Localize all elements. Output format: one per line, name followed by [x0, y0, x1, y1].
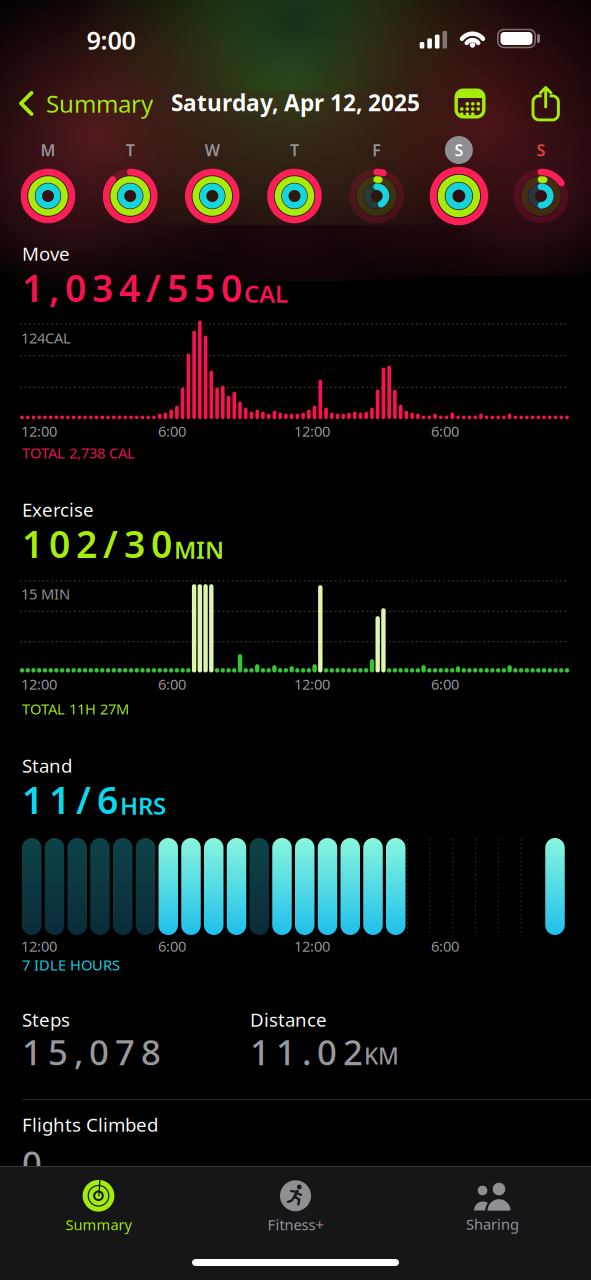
staticText: 6:00	[158, 936, 186, 956]
staticText: 0	[22, 1140, 42, 1186]
staticText: M	[40, 139, 55, 161]
staticText: Exercise	[22, 497, 94, 522]
staticText: 12:00	[21, 936, 57, 956]
staticText: 6:00	[431, 674, 459, 694]
staticText: Distance	[250, 1007, 327, 1032]
staticText: TOTAL 2,738 CAL	[22, 443, 135, 462]
staticText: Summary	[46, 87, 153, 119]
staticText: 7 IDLE HOURS	[22, 955, 120, 974]
button[interactable]: T	[99, 135, 161, 227]
staticText: 6:00	[431, 421, 459, 441]
staticText: Sharing	[466, 1214, 519, 1234]
staticText: 12:00	[294, 421, 330, 441]
staticText: W	[205, 139, 220, 161]
staticText: 6:00	[431, 936, 459, 956]
staticText: Steps	[22, 1007, 70, 1032]
button[interactable]: Back	[19, 87, 153, 119]
staticText: KM	[364, 1041, 399, 1071]
staticText: 1 , 0 3 4 / 5 5 0	[22, 263, 242, 312]
staticText: Saturday, Apr 12, 2025	[171, 87, 420, 117]
button[interactable]: Share	[533, 86, 559, 120]
button[interactable]: S	[428, 135, 490, 227]
staticText: 15 MIN	[21, 584, 70, 603]
button[interactable]: Choose date	[454, 88, 485, 118]
staticText: T	[126, 139, 135, 161]
staticText: 12:00	[294, 936, 330, 956]
button[interactable]: F	[346, 135, 408, 227]
staticText: 1 5 , 0 7 8	[22, 1029, 161, 1075]
staticText: TOTAL 11H 27M	[22, 699, 129, 718]
button[interactable]: Fitness+	[197, 1175, 394, 1239]
button[interactable]: W	[181, 135, 243, 227]
button[interactable]: M	[17, 135, 79, 227]
button[interactable]: S	[510, 135, 572, 227]
staticText: 6:00	[158, 421, 186, 441]
staticText: 124CAL	[21, 328, 71, 347]
staticText: S	[536, 139, 545, 161]
staticText: 1 1 / 6	[22, 775, 118, 824]
button[interactable]: Summary	[0, 1175, 197, 1239]
staticText: 9:00	[86, 23, 135, 57]
button[interactable]: T	[263, 135, 325, 227]
staticText: CAL	[244, 277, 288, 309]
staticText: T	[290, 139, 299, 161]
staticText: Flights Climbed	[22, 1112, 158, 1137]
staticText: Fitness+	[267, 1215, 323, 1234]
staticText: 1 0 2 / 3 0	[22, 519, 172, 568]
staticText: Summary	[65, 1215, 131, 1234]
staticText: 6:00	[158, 674, 186, 694]
staticText: F	[372, 139, 381, 161]
staticText: HRS	[120, 789, 166, 821]
staticText: 12:00	[21, 421, 57, 441]
staticText: 12:00	[21, 674, 57, 694]
button[interactable]: Sharing	[394, 1175, 591, 1239]
staticText: S	[454, 139, 463, 161]
staticText: MIN	[174, 533, 224, 565]
staticText: Move	[22, 241, 70, 266]
staticText: 12:00	[294, 674, 330, 694]
staticText: Stand	[22, 753, 72, 778]
staticText: 1 1 . 0 2	[250, 1029, 363, 1075]
